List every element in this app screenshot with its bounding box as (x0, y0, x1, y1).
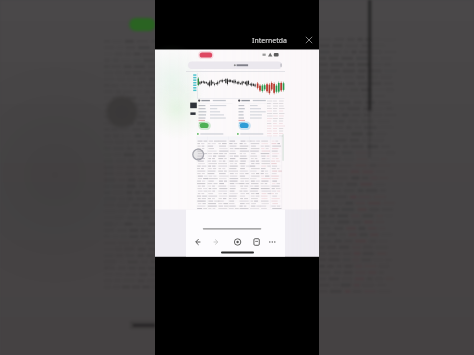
button[interactable]: Internetda oso… (252, 34, 304, 46)
button[interactable]: Close (303, 34, 315, 46)
staticText: Internetda oso… (252, 36, 304, 45)
